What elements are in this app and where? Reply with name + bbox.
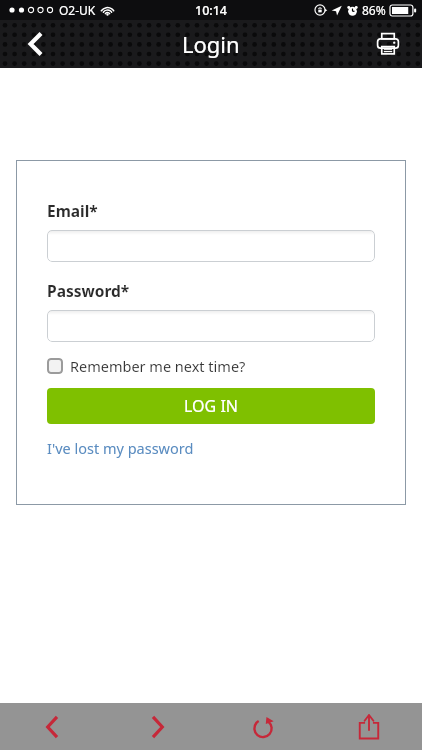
staticText: O2-UK [59, 2, 96, 18]
staticText: 10:14 [195, 2, 228, 19]
button[interactable]: Remember me next time? [47, 356, 375, 376]
staticText: Email* [47, 200, 98, 221]
staticText: Password* [47, 280, 130, 301]
staticText: I've lost my password [47, 438, 194, 458]
button[interactable] [47, 310, 375, 342]
button[interactable]: Back [14, 22, 58, 66]
staticText: 86% [362, 2, 386, 18]
button[interactable]: Forward [105, 703, 210, 750]
button[interactable]: Print [366, 22, 410, 66]
staticText: Login [182, 29, 240, 59]
staticText: Remember me next time? [70, 356, 246, 376]
button[interactable]: Back [0, 703, 105, 750]
button[interactable]: Reload [210, 703, 316, 750]
button[interactable]: Share [316, 703, 422, 750]
button[interactable]: I've lost my password [47, 438, 194, 458]
button[interactable]: LOG IN [47, 388, 375, 424]
button[interactable] [47, 230, 375, 262]
staticText: LOG IN [184, 395, 238, 417]
